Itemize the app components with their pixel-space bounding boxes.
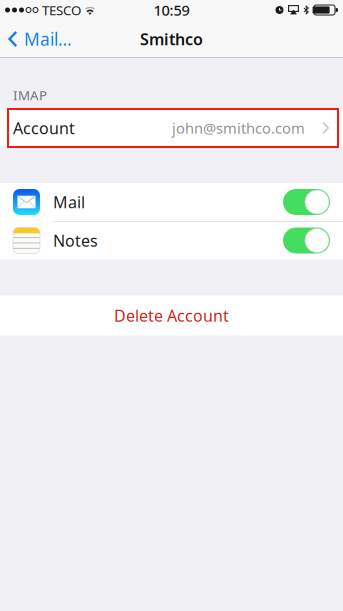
button[interactable]: Mail… bbox=[0, 20, 80, 58]
button[interactable]: Mail, on bbox=[283, 189, 330, 215]
staticText: john@smithco.com bbox=[172, 118, 305, 138]
staticText: Account bbox=[13, 117, 75, 139]
staticText: IMAP bbox=[13, 86, 47, 104]
staticText: Mail… bbox=[24, 27, 72, 50]
staticText: Delete Account bbox=[114, 305, 229, 326]
staticText: Smithco bbox=[140, 28, 203, 50]
staticText: Mail bbox=[53, 191, 85, 213]
staticText: 10:59 bbox=[153, 0, 189, 20]
button[interactable]: Notes, on bbox=[283, 227, 330, 253]
button[interactable]: Delete Account bbox=[0, 295, 343, 335]
staticText: TESCO bbox=[42, 1, 81, 19]
staticText: Notes bbox=[53, 230, 98, 251]
button[interactable]: Account bbox=[0, 109, 343, 147]
